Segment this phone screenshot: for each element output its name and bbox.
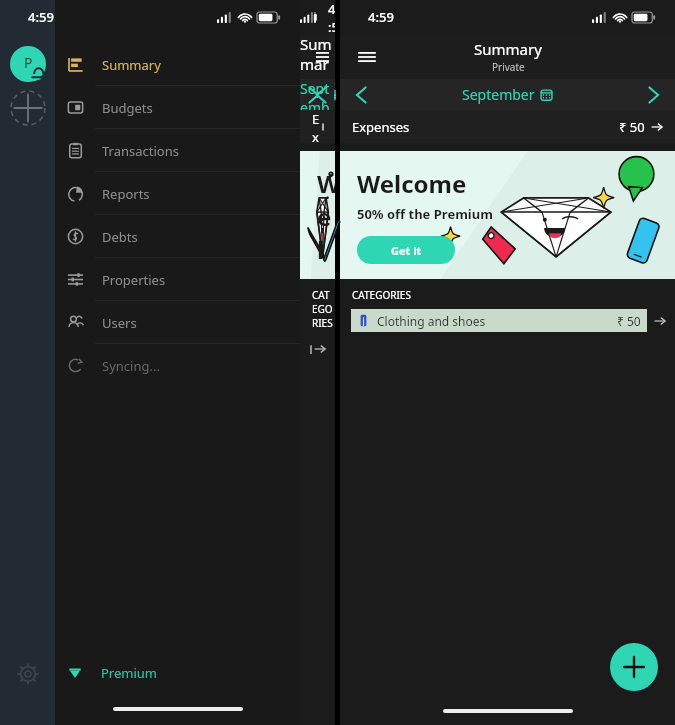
staticText: Welcome: [317, 167, 335, 279]
staticText: Summary: [474, 39, 542, 59]
button[interactable]: Budgets: [55, 86, 300, 129]
button[interactable]: Menu: [350, 40, 384, 74]
button[interactable]: Transactions: [55, 129, 300, 172]
button[interactable]: Welcome: [340, 151, 675, 279]
staticText: Transactions: [102, 142, 179, 160]
button[interactable]: Menu: [310, 40, 335, 74]
button[interactable]: Debts: [55, 215, 300, 258]
button[interactable]: September: [300, 79, 335, 110]
staticText: 4:59: [368, 8, 394, 26]
button[interactable]: Next month: [301, 81, 329, 109]
staticText: Reports: [102, 185, 150, 203]
button[interactable]: Clothing and shoes: [300, 337, 335, 360]
staticText: Budgets: [102, 99, 153, 117]
staticText: Summary: [300, 34, 335, 79]
staticText: P: [24, 53, 33, 72]
button[interactable]: Add: [610, 643, 658, 691]
button[interactable]: Welcome: [300, 151, 335, 279]
button[interactable]: Profile: [10, 46, 46, 82]
button[interactable]: Expenses: [340, 110, 675, 143]
button[interactable]: Get it: [357, 236, 455, 264]
staticText: Expenses: [352, 118, 410, 136]
staticText: 4:59: [28, 8, 54, 26]
staticText: CATEGORIES: [352, 288, 411, 302]
button[interactable]: September: [462, 85, 553, 104]
button[interactable]: Reports: [55, 172, 300, 215]
staticText: September: [300, 79, 335, 110]
staticText: 4:59: [328, 0, 335, 34]
button[interactable]: Expenses: [300, 110, 335, 143]
staticText: 50% off the Premium: [357, 205, 493, 223]
staticText: Clothing and shoes: [377, 313, 486, 329]
staticText: Private: [492, 60, 525, 74]
button[interactable]: Clothing and shoes: [340, 309, 675, 332]
staticText: Get it: [391, 243, 422, 258]
staticText: ₹ 50: [617, 313, 641, 329]
button[interactable]: Add account: [10, 90, 46, 126]
staticText: Debts: [102, 228, 138, 246]
button[interactable]: Summary: [55, 43, 300, 86]
button[interactable]: Premium: [55, 655, 300, 691]
staticText: Expenses: [312, 110, 323, 143]
button[interactable]: Users: [55, 301, 300, 344]
staticText: CATEGORIES: [312, 288, 335, 330]
staticText: Summary: [102, 56, 161, 74]
staticText: Properties: [102, 271, 166, 289]
button[interactable]: Next month: [641, 81, 669, 109]
staticText: Users: [102, 314, 137, 332]
staticText: September: [462, 85, 535, 104]
button[interactable]: Previous month: [306, 81, 334, 109]
button[interactable]: Previous month: [346, 81, 374, 109]
staticText: ₹ 50: [619, 118, 645, 136]
button[interactable]: Properties: [55, 258, 300, 301]
button[interactable]: Settings: [15, 661, 41, 687]
staticText: Syncing...: [102, 357, 160, 375]
staticText: Welcome: [357, 167, 467, 200]
staticText: Premium: [101, 664, 158, 682]
button[interactable]: Syncing...: [55, 344, 300, 387]
